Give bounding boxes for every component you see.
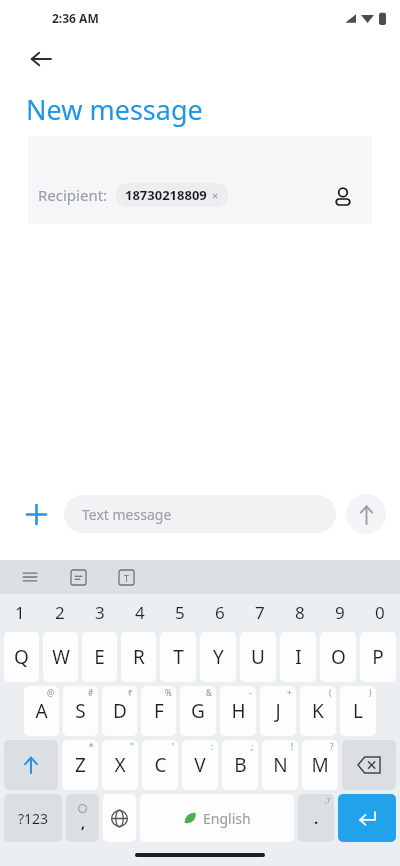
staticText: 3 <box>95 601 105 624</box>
staticText: ,? <box>325 796 330 806</box>
button[interactable]: U <box>240 632 276 682</box>
staticText: Text message <box>82 505 172 524</box>
button[interactable]: G <box>180 686 216 736</box>
button[interactable]: A <box>24 686 59 736</box>
staticText: F <box>154 698 164 724</box>
button[interactable]: L <box>340 686 376 736</box>
staticText: G <box>191 698 205 724</box>
staticText: P <box>372 644 384 670</box>
button[interactable]: Y <box>200 632 236 682</box>
button[interactable]: Shift <box>4 740 58 790</box>
staticText: H <box>231 698 246 724</box>
button[interactable]: 7 <box>240 594 280 630</box>
staticText: 5 <box>175 601 185 624</box>
button[interactable]: Menu <box>18 565 42 589</box>
button[interactable]: Recipient: <box>28 136 372 224</box>
staticText: 1 <box>15 601 25 624</box>
staticText: ?123 <box>18 809 49 828</box>
button[interactable]: M <box>302 740 338 790</box>
button[interactable]: 6 <box>200 594 240 630</box>
staticText: + <box>287 687 292 698</box>
button[interactable]: 2 <box>40 594 80 630</box>
button[interactable]: C <box>142 740 178 790</box>
staticText: L <box>353 698 363 724</box>
button[interactable]: T <box>160 632 196 682</box>
button[interactable]: Add attachment <box>14 492 58 536</box>
staticText: 6 <box>215 601 225 624</box>
button[interactable]: English <box>140 794 294 842</box>
staticText: V <box>194 752 206 778</box>
staticText: & <box>206 687 212 698</box>
staticText: ; <box>251 741 254 752</box>
button[interactable]: F <box>141 686 176 736</box>
staticText: 9 <box>335 601 345 624</box>
staticText: 0 <box>375 601 385 624</box>
button[interactable]: Enter <box>338 794 396 842</box>
button[interactable]: H <box>220 686 256 736</box>
button[interactable]: 18730218809 <box>125 186 219 204</box>
button[interactable]: Send <box>346 494 386 534</box>
button[interactable]: D <box>102 686 137 736</box>
staticText: D <box>113 698 127 724</box>
staticText: English <box>203 809 251 828</box>
staticText: New message <box>26 91 203 128</box>
button[interactable]: ,? <box>298 794 334 842</box>
button[interactable]: Contacts <box>326 180 360 214</box>
button[interactable]: 1 <box>0 594 40 630</box>
button[interactable]: 4 <box>120 594 160 630</box>
staticText: : <box>211 741 214 752</box>
button[interactable]: 5 <box>160 594 200 630</box>
staticText: A <box>35 698 48 724</box>
staticText: " <box>130 741 134 752</box>
staticText: ! <box>291 741 294 752</box>
button[interactable]: ?123 <box>4 794 62 842</box>
staticText: C <box>154 752 167 778</box>
button[interactable]: 0 <box>360 594 400 630</box>
staticText: @ <box>47 687 55 698</box>
staticText: . <box>314 808 319 828</box>
button[interactable]: Backspace <box>342 740 396 790</box>
button[interactable]: I <box>280 632 316 682</box>
button[interactable]: W <box>43 632 78 682</box>
button[interactable]: Q <box>4 632 39 682</box>
staticText: Recipient: <box>38 185 108 205</box>
staticText: O <box>331 644 346 670</box>
button[interactable]: , <box>66 794 99 842</box>
staticText: X <box>114 752 126 778</box>
button[interactable]: Z <box>62 740 98 790</box>
staticText: ? <box>330 741 334 752</box>
staticText: × <box>212 188 219 203</box>
button[interactable]: Text message <box>64 495 336 533</box>
button[interactable]: 9 <box>320 594 360 630</box>
button[interactable]: Change language <box>103 794 136 842</box>
button[interactable]: B <box>222 740 258 790</box>
button[interactable]: Text settings <box>114 565 138 589</box>
button[interactable]: 8 <box>280 594 320 630</box>
staticText: T <box>124 572 130 584</box>
button[interactable]: K <box>300 686 336 736</box>
button[interactable]: 3 <box>80 594 120 630</box>
staticText: I <box>295 644 302 670</box>
button[interactable]: V <box>182 740 218 790</box>
button[interactable]: P <box>360 632 396 682</box>
button[interactable]: O <box>320 632 356 682</box>
staticText: U <box>251 644 265 670</box>
button[interactable]: S <box>63 686 98 736</box>
staticText: Y <box>213 644 224 670</box>
button[interactable]: N <box>262 740 298 790</box>
button[interactable]: J <box>260 686 296 736</box>
staticText: B <box>234 752 247 778</box>
staticText: # <box>88 687 94 698</box>
staticText: 7 <box>255 601 265 624</box>
button[interactable]: X <box>102 740 138 790</box>
button[interactable]: Back <box>22 40 60 78</box>
button[interactable]: E <box>82 632 117 682</box>
staticText: Q <box>14 644 29 670</box>
button[interactable]: Clipboard <box>66 565 90 589</box>
staticText: % <box>165 687 172 698</box>
button[interactable]: R <box>121 632 156 682</box>
staticText: , <box>81 813 85 832</box>
staticText: Z <box>75 752 86 778</box>
staticText: 8 <box>295 601 305 624</box>
staticText: ( <box>329 687 332 698</box>
